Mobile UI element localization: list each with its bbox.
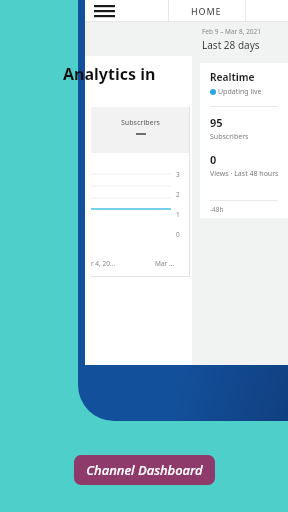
staticText: 0 <box>210 152 217 167</box>
button[interactable]: Open navigation menu <box>92 1 116 21</box>
staticText: Channel Dashboard <box>86 461 203 479</box>
staticText: 95 <box>210 115 223 130</box>
staticText: Feb 9 – Mar 8, 2021 <box>202 27 262 36</box>
staticText: 0 <box>176 230 180 238</box>
staticText: Subscribers <box>121 118 160 128</box>
staticText: -48h <box>210 205 224 214</box>
button[interactable]: Feb 9 – Mar 8, 2021 <box>202 27 262 52</box>
button[interactable]: Realtime <box>200 63 288 218</box>
staticText: Mar … <box>155 259 175 268</box>
staticText: 2 <box>176 190 180 198</box>
button[interactable]: Channel Dashboard <box>74 455 215 485</box>
staticText: 1 <box>176 210 180 218</box>
staticText: 3 <box>176 170 180 178</box>
staticText: Analytics in the <box>63 63 170 85</box>
button[interactable]: Subscribers <box>91 107 190 277</box>
staticText: Last 28 days <box>202 38 260 52</box>
staticText: Views · Last 48 hours <box>210 169 279 179</box>
staticText: HOME <box>191 5 222 17</box>
staticText: Updating live <box>218 87 262 97</box>
staticText: Subscribers <box>210 132 249 142</box>
button[interactable]: HOME <box>168 0 245 22</box>
staticText: r 4, 20… <box>91 259 116 268</box>
staticText: Realtime <box>210 70 255 84</box>
